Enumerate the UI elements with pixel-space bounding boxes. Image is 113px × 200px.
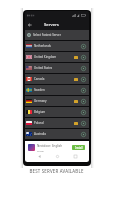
button[interactable]: Sweden — [25, 85, 89, 96]
staticText: United Kingdom — [34, 55, 57, 59]
button[interactable]: Back — [35, 154, 43, 159]
staticText: Sweden — [34, 88, 45, 92]
button[interactable]: Belgium — [25, 107, 89, 118]
button[interactable]: Back — [25, 20, 34, 29]
staticText: Canada — [34, 77, 45, 81]
staticText: Select Fastest Server — [33, 33, 61, 37]
button[interactable]: Canada — [25, 74, 89, 85]
button[interactable]: Germany — [25, 96, 89, 107]
staticText: Install — [75, 146, 83, 150]
button[interactable]: United Kingdom — [25, 52, 89, 63]
staticText: Nextdoor: English — [37, 144, 63, 148]
button[interactable]: Netherlands — [25, 41, 89, 52]
button[interactable]: Home — [53, 154, 61, 159]
staticText: United States — [34, 66, 53, 70]
button[interactable]: Poland — [25, 118, 89, 129]
button[interactable]: Recents — [71, 154, 79, 159]
button[interactable]: Nextdoor: English — [25, 141, 89, 154]
button[interactable]: Select Fastest Server — [25, 30, 89, 41]
button[interactable]: Australia — [25, 129, 89, 140]
staticText: Social — [37, 149, 44, 152]
staticText: Netherlands — [34, 44, 51, 48]
staticText: BEST SERVER AVAILABLE — [0, 168, 113, 174]
staticText: Poland — [34, 121, 44, 125]
staticText: Australia — [34, 132, 46, 136]
button[interactable]: Install — [72, 145, 85, 150]
staticText: Servers — [44, 22, 59, 28]
staticText: Belgium — [34, 110, 46, 114]
staticText: Germany — [34, 99, 47, 103]
button[interactable]: United States — [25, 63, 89, 74]
